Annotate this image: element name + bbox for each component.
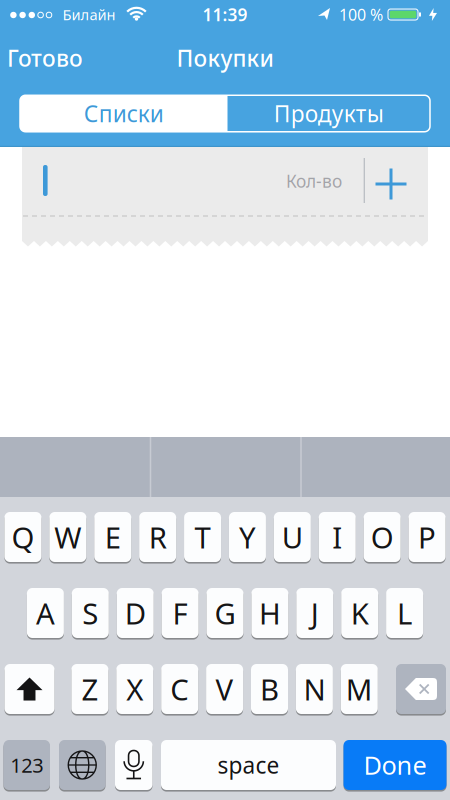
staticText: Y xyxy=(239,517,256,556)
staticText: H xyxy=(259,593,281,632)
button[interactable]: Q xyxy=(4,512,41,562)
button[interactable]: S xyxy=(72,588,109,638)
button[interactable]: Next keyboard xyxy=(59,740,105,790)
staticText: Готово xyxy=(7,43,83,73)
button[interactable]: Готово xyxy=(7,43,83,73)
staticText: J xyxy=(311,593,319,632)
staticText: space xyxy=(217,750,279,780)
button[interactable]: D xyxy=(117,588,154,638)
staticText: Done xyxy=(363,748,426,782)
button[interactable]: O xyxy=(364,512,401,562)
button[interactable]: U xyxy=(274,512,311,562)
button[interactable]: H xyxy=(251,588,288,638)
button[interactable]: Numbers xyxy=(3,740,50,790)
staticText: E xyxy=(105,517,121,556)
button[interactable]: C xyxy=(161,664,198,714)
staticText: O xyxy=(371,517,394,556)
staticText: Покупки xyxy=(176,43,273,73)
button[interactable]: M xyxy=(341,664,378,714)
staticText: G xyxy=(214,593,235,632)
staticText: K xyxy=(351,593,369,632)
button[interactable]: G xyxy=(206,588,243,638)
button[interactable]: T xyxy=(184,512,221,562)
button[interactable]: Добавить xyxy=(375,168,406,199)
button[interactable]: B xyxy=(251,664,288,714)
staticText: 11:39 xyxy=(202,3,247,26)
button[interactable]: W xyxy=(49,512,86,562)
staticText: N xyxy=(303,669,325,708)
staticText: P xyxy=(418,517,436,556)
staticText: R xyxy=(149,517,167,556)
staticText: 123 xyxy=(10,752,43,778)
staticText: M xyxy=(346,669,373,708)
staticText: V xyxy=(216,669,234,708)
staticText: X xyxy=(126,669,143,708)
button[interactable]: Y xyxy=(229,512,266,562)
staticText: F xyxy=(173,593,188,632)
staticText: 100 % xyxy=(339,4,383,25)
staticText: S xyxy=(82,593,98,632)
staticText: I xyxy=(332,517,342,556)
staticText: Продукты xyxy=(274,98,384,128)
staticText: C xyxy=(170,669,189,708)
staticText: Q xyxy=(11,517,34,556)
staticText: W xyxy=(54,517,81,556)
staticText: U xyxy=(282,517,303,556)
button[interactable]: A xyxy=(27,588,64,638)
staticText: Z xyxy=(81,669,98,708)
staticText: Билайн xyxy=(62,5,115,24)
button[interactable]: N xyxy=(296,664,333,714)
button[interactable]: X xyxy=(116,664,153,714)
staticText: Кол-во xyxy=(286,169,342,192)
button[interactable]: L xyxy=(386,588,423,638)
button[interactable]: Списки xyxy=(20,95,227,132)
button[interactable]: V xyxy=(206,664,243,714)
button[interactable]: Done xyxy=(343,740,446,790)
button[interactable]: P xyxy=(408,512,445,562)
button[interactable]: I xyxy=(319,512,356,562)
button[interactable]: Delete xyxy=(396,664,446,714)
button[interactable]: J xyxy=(296,588,333,638)
staticText: A xyxy=(36,593,55,632)
button[interactable]: E xyxy=(94,512,131,562)
button[interactable]: Z xyxy=(71,664,108,714)
button[interactable]: space xyxy=(161,740,336,790)
staticText: T xyxy=(194,517,210,556)
staticText: Списки xyxy=(84,98,164,128)
button[interactable]: R xyxy=(139,512,176,562)
button[interactable]: Продукты xyxy=(227,95,430,132)
button[interactable]: Shift xyxy=(4,664,54,714)
button[interactable]: K xyxy=(341,588,378,638)
staticText: L xyxy=(397,593,412,632)
button[interactable]: F xyxy=(162,588,199,638)
button[interactable]: Dictate xyxy=(115,740,152,790)
staticText: B xyxy=(260,669,279,708)
staticText: D xyxy=(125,593,146,632)
